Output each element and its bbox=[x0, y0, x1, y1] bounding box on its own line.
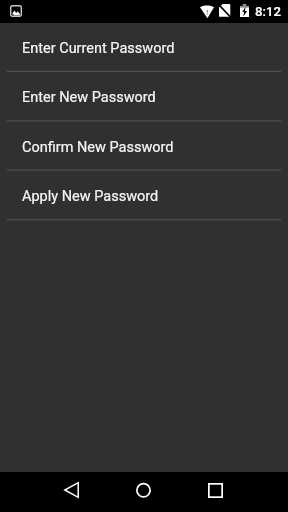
staticText: Apply New Password bbox=[22, 188, 159, 205]
staticText: 8:12 bbox=[255, 4, 281, 19]
staticText: Enter Current Password bbox=[22, 40, 175, 57]
button[interactable]: Apply New Password bbox=[0, 171, 288, 220]
staticText: Enter New Password bbox=[22, 89, 156, 106]
button[interactable]: Recent apps bbox=[191, 472, 239, 512]
staticText: Confirm New Password bbox=[22, 139, 174, 156]
button[interactable]: Enter Current Password bbox=[0, 23, 288, 72]
button[interactable]: Back bbox=[47, 472, 95, 512]
button[interactable]: Home bbox=[119, 472, 167, 512]
button[interactable]: Confirm New Password bbox=[0, 122, 288, 171]
button[interactable]: Enter New Password bbox=[0, 72, 288, 121]
